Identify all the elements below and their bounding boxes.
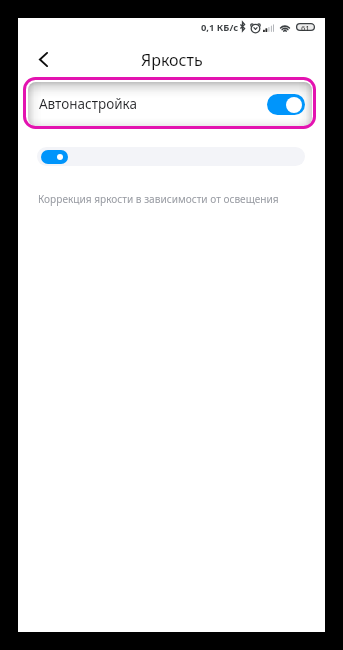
- button[interactable]: Назад: [29, 45, 57, 73]
- button[interactable]: Автонастройка: [28, 82, 312, 126]
- staticText: Коррекция яркости в зависимости от освещ…: [38, 192, 279, 206]
- button[interactable]: Яркость: [37, 147, 305, 166]
- staticText: Автонастройка: [39, 95, 137, 113]
- button[interactable]: Автонастройка включена: [267, 94, 305, 115]
- staticText: 61: [301, 23, 310, 31]
- staticText: 0,1 КБ/c: [201, 21, 239, 34]
- staticText: Яркость: [141, 49, 203, 71]
